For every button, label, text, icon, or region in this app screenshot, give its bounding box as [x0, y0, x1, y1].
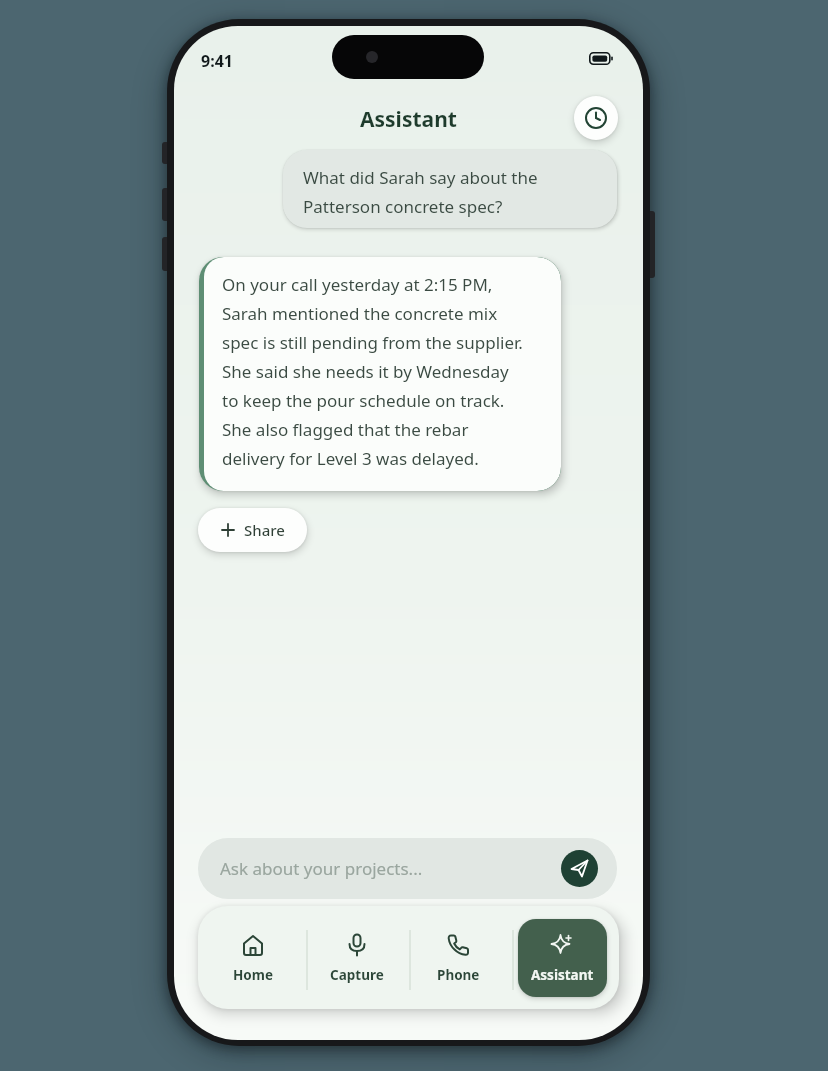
staticText: Phone	[437, 966, 480, 984]
button[interactable]	[574, 96, 618, 140]
staticText: Assistant	[531, 966, 594, 984]
staticText: 9:41	[201, 50, 233, 72]
staticText: On your call yesterday at 2:15 PM, Sarah…	[222, 273, 523, 470]
button[interactable]: Home	[205, 933, 301, 984]
staticText: Assistant	[360, 105, 457, 134]
button[interactable]	[561, 850, 598, 887]
staticText: Home	[233, 966, 273, 984]
staticText: Capture	[330, 966, 384, 984]
button[interactable]: Ask about your projects...	[198, 838, 617, 899]
button[interactable]: Share	[198, 508, 307, 552]
button[interactable]: Phone	[410, 933, 506, 984]
button[interactable]: Capture	[309, 933, 405, 984]
staticText: Ask about your projects...	[220, 857, 423, 880]
button[interactable]: Assistant	[514, 933, 610, 984]
staticText: What did Sarah say about the Patterson c…	[303, 166, 538, 218]
staticText: Share	[244, 520, 285, 540]
button[interactable]	[518, 919, 607, 997]
